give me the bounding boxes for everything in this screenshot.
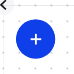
button[interactable]: Back	[0, 0, 12, 12]
button[interactable]: Add	[16, 19, 56, 59]
